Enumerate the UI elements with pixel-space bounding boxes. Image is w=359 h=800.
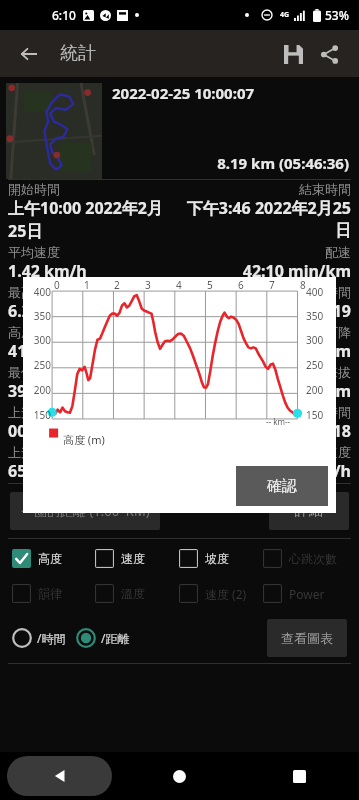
staticText: 速度 (2) <box>205 586 247 602</box>
staticText: 坡度 <box>205 551 229 566</box>
staticText: /距離 <box>101 630 130 646</box>
staticText: 03:13:19 <box>179 300 351 322</box>
staticText: 400 <box>306 285 336 299</box>
staticText: 00:37:40 <box>8 420 179 442</box>
staticText: 最高速度 <box>8 284 179 300</box>
staticText: 4G <box>280 10 290 20</box>
staticText: 400 <box>23 285 51 299</box>
staticText: 2 <box>114 278 120 292</box>
button[interactable]: Power <box>263 580 347 607</box>
staticText: 上午10:00 2022年2月25日 <box>8 197 179 242</box>
staticText: 最低海拔 <box>8 364 179 380</box>
button[interactable]: Home <box>119 752 239 800</box>
staticText: 350 <box>23 309 51 323</box>
staticText: -- km-- <box>266 416 291 427</box>
staticText: 一圈的距離 (1.00 KM) <box>21 502 150 520</box>
staticText: 1229.09 m/h <box>179 460 351 482</box>
staticText: 1.42 km/h <box>8 260 179 282</box>
staticText: 6.20 km/h <box>8 300 179 322</box>
button[interactable]: 詳細 <box>269 492 349 530</box>
staticText: 200 <box>23 383 51 397</box>
staticText: 42:10 min/km <box>179 260 351 282</box>
staticText: 上升時間 <box>8 404 179 420</box>
staticText: 速度 <box>121 551 145 566</box>
staticText: 300 <box>23 333 51 347</box>
button[interactable]: Back <box>12 37 46 71</box>
staticText: 39 m <box>8 380 179 402</box>
staticText: 7 <box>269 278 275 292</box>
button[interactable]: Share <box>311 36 347 72</box>
staticText: 結束時間 <box>179 181 351 197</box>
staticText: 查看圖表 <box>281 630 333 646</box>
staticText: 移動時間 <box>179 284 351 300</box>
staticText: 溫度 <box>121 586 145 601</box>
staticText: Power <box>289 586 325 602</box>
staticText: 配速 <box>179 244 351 260</box>
staticText: 6:10 <box>52 7 76 23</box>
staticText: 300 <box>306 333 336 347</box>
staticText: 00:20:18 <box>179 420 351 442</box>
staticText: 確認 <box>267 477 297 496</box>
button[interactable]: 心跳次數 <box>263 545 347 572</box>
staticText: /時間 <box>37 630 66 646</box>
button[interactable]: Save <box>275 36 311 72</box>
staticText: 下午3:46 2022年2月25日 <box>179 197 351 241</box>
staticText: 413 m <box>8 340 179 362</box>
button[interactable]: 高度 <box>12 545 95 572</box>
staticText: 高度下降 <box>179 324 351 340</box>
staticText: 0 <box>54 278 60 292</box>
button[interactable]: 查看圖表 <box>267 619 347 657</box>
staticText: 250 <box>23 358 51 372</box>
button[interactable]: 速度 (2) <box>179 580 263 607</box>
staticText: 150 <box>306 408 336 422</box>
staticText: 658.14 m/h <box>8 460 179 482</box>
staticText: 下降速度 <box>179 444 351 460</box>
staticText: 高度 <box>38 551 62 566</box>
staticText: 詳細 <box>295 502 323 520</box>
staticText: 上升速度 <box>8 444 179 460</box>
button[interactable]: 韻律 <box>12 580 95 607</box>
staticText: 6 <box>238 278 244 292</box>
staticText: 250 <box>306 358 336 372</box>
staticText: 高度上升 <box>8 324 179 340</box>
button[interactable]: Back <box>7 756 112 796</box>
button[interactable]: /時間 <box>12 628 66 648</box>
button[interactable]: 確認 <box>236 466 328 506</box>
staticText: 平均速度 <box>8 244 179 260</box>
button[interactable]: /距離 <box>76 628 130 648</box>
button[interactable]: 溫度 <box>95 580 179 607</box>
staticText: 150 <box>23 408 51 422</box>
staticText: 2022-02-25 10:00:07 <box>112 83 349 103</box>
staticText: 韻律 <box>38 586 62 601</box>
staticText: 統計 <box>60 42 96 65</box>
staticText: 開始時間 <box>8 181 179 197</box>
staticText: 416 m <box>179 340 351 362</box>
button[interactable]: 速度 <box>95 545 179 572</box>
button[interactable]: 坡度 <box>179 545 263 572</box>
staticText: 心跳次數 <box>289 551 337 566</box>
staticText: 53% <box>325 7 349 23</box>
staticText: 397 m <box>179 380 351 402</box>
staticText: 200 <box>306 383 336 397</box>
staticText: 8 <box>300 278 306 292</box>
staticText: 8.19 km (05:46:36) <box>112 153 349 173</box>
button[interactable]: Recents <box>239 752 359 800</box>
staticText: 5 <box>207 278 213 292</box>
staticText: 最高海拔 <box>179 364 351 380</box>
staticText: 1 <box>84 278 90 292</box>
staticText: 下降時間 <box>179 404 351 420</box>
button[interactable]: 一圈的距離 (1.00 KM) <box>10 492 160 530</box>
staticText: 4 <box>176 278 182 292</box>
staticText: 3 <box>145 278 151 292</box>
staticText: 高度 (m) <box>63 432 105 447</box>
staticText: 350 <box>306 309 336 323</box>
